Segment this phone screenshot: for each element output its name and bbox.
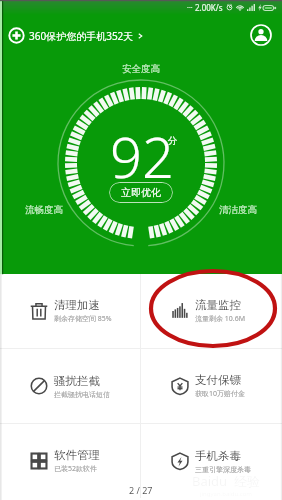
staticText: 2 / 27: [129, 484, 153, 496]
button[interactable]: 360保护您的手机352天: [6, 23, 145, 48]
staticText: 92: [110, 118, 174, 194]
staticText: 清理加速: [54, 298, 100, 312]
staticText: 安全度高: [122, 63, 160, 75]
staticText: 流量剩余 10.6M: [195, 314, 246, 324]
button[interactable]: 软件管理: [0, 424, 140, 498]
staticText: Baidu 经验: [192, 472, 260, 490]
staticText: 拦截骚扰电话短信: [54, 390, 110, 399]
button[interactable]: 手机杀毒: [141, 424, 282, 498]
staticText: 骚扰拦截: [54, 374, 100, 388]
button[interactable]: 清理加速: [0, 274, 140, 348]
staticText: 立即优化: [121, 186, 161, 199]
staticText: 手机杀毒: [195, 449, 241, 463]
staticText: 剩余存储空间 85%: [54, 314, 112, 324]
staticText: 360保护您的手机352天: [29, 29, 134, 43]
staticText: ···: [187, 3, 193, 13]
button[interactable]: Account: [248, 22, 274, 48]
staticText: 流量监控: [195, 298, 241, 312]
staticText: 已装52款软件: [54, 464, 98, 474]
staticText: 三重引擎深度杀毒: [195, 465, 251, 474]
staticText: 流畅度高: [25, 204, 63, 216]
staticText: 清洁度高: [219, 204, 257, 216]
staticText: 2.00K/s: [195, 2, 223, 13]
staticText: 分: [168, 135, 178, 147]
button[interactable]: 支付保镖: [141, 349, 282, 423]
staticText: 软件管理: [54, 448, 100, 462]
staticText: 获取10万赔付金: [195, 389, 246, 399]
staticText: 支付保镖: [195, 373, 241, 387]
button[interactable]: 骚扰拦截: [0, 349, 140, 423]
button[interactable]: 流量监控: [141, 274, 282, 348]
button[interactable]: 立即优化: [109, 182, 173, 203]
